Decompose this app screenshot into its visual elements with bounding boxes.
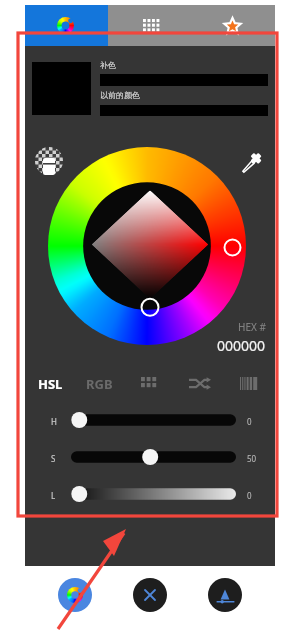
button[interactable]: Palettes — [108, 5, 191, 46]
staticText: 0 — [247, 416, 252, 427]
button[interactable]: Eyedropper — [238, 147, 266, 175]
staticText: S — [51, 453, 56, 464]
button[interactable]: RGB — [84, 375, 115, 393]
staticText: HEX # — [238, 320, 266, 334]
other: Colour picker — [67, 587, 83, 603]
button[interactable] — [63, 410, 244, 430]
staticText: H — [51, 416, 57, 427]
button[interactable] — [63, 447, 244, 467]
button[interactable]: HSL — [36, 375, 65, 393]
other: Palettes — [143, 19, 161, 33]
button[interactable]: Favorites — [191, 5, 275, 46]
button[interactable]: Gradients — [239, 373, 261, 393]
button[interactable]: Transparency — [35, 147, 63, 175]
staticText: 50 — [247, 453, 257, 464]
other: Shuffle — [189, 377, 211, 390]
button[interactable]: Shuffle — [188, 373, 212, 393]
staticText: 000000 — [217, 336, 266, 355]
staticText: HSL — [38, 375, 63, 393]
staticText: 0 — [247, 490, 252, 501]
other: Color wheel — [57, 17, 74, 34]
button[interactable]: Tools — [208, 578, 242, 612]
staticText: RGB — [86, 375, 113, 393]
staticText: L — [51, 490, 56, 501]
staticText: 以前的颜色 — [100, 90, 140, 100]
other: Tools — [215, 585, 235, 605]
other: Gradients — [240, 377, 260, 390]
button[interactable]: HEX # — [175, 320, 266, 355]
other: Swatches — [141, 377, 158, 389]
other: Eyedropper — [242, 151, 263, 172]
button[interactable]: Colour picker — [58, 578, 92, 612]
other: Close — [145, 590, 155, 600]
button[interactable]: Colour wheel — [48, 147, 246, 345]
button[interactable] — [63, 484, 244, 504]
staticText: 补色 — [100, 60, 116, 70]
other: Favorites — [225, 18, 240, 33]
other: Transparency — [35, 147, 63, 175]
button[interactable]: Swatches — [138, 373, 161, 393]
button[interactable]: Color wheel — [25, 5, 108, 46]
button[interactable]: Close — [133, 578, 167, 612]
